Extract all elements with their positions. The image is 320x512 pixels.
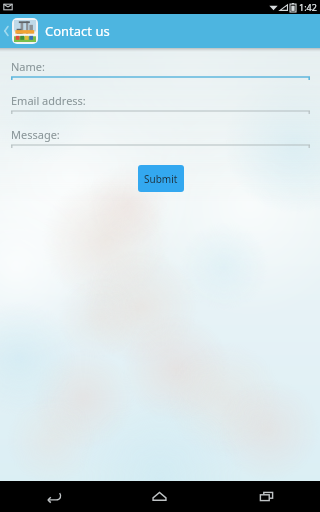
- button[interactable]: Recent apps: [213, 481, 320, 512]
- button[interactable]: Submit: [138, 165, 184, 192]
- button[interactable]: Email address:: [11, 93, 310, 114]
- staticText: Email address:: [11, 93, 86, 108]
- button[interactable]: Message:: [11, 127, 310, 148]
- button[interactable]: Back: [0, 481, 106, 512]
- staticText: Name:: [11, 59, 45, 74]
- staticText: Contact us: [45, 22, 110, 40]
- staticText: Message:: [11, 127, 60, 142]
- button[interactable]: Home: [106, 481, 213, 512]
- button[interactable]: Navigate up: [3, 14, 11, 48]
- staticText: 1:42: [299, 1, 317, 13]
- staticText: Submit: [144, 172, 178, 186]
- button[interactable]: Name:: [11, 59, 310, 80]
- button[interactable]: App icon: [12, 18, 38, 44]
